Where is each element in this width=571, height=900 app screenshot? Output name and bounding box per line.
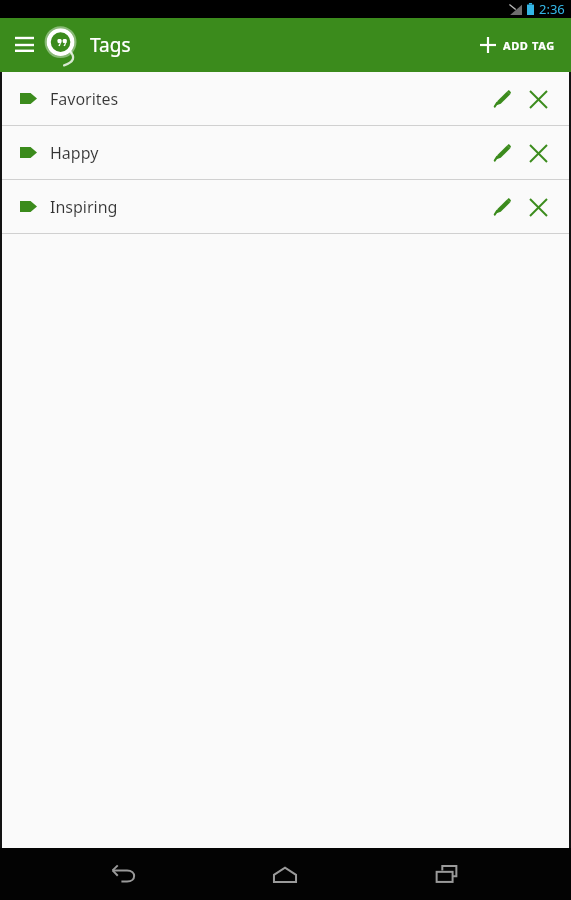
staticText: ADD TAG [503,38,555,53]
button[interactable]: Happy [2,126,569,179]
button[interactable]: Delete Favorites [521,82,555,116]
staticText: Tags [90,32,131,58]
staticText: Inspiring [50,196,118,218]
button[interactable]: Inspiring [2,180,569,233]
button[interactable]: ADD TAG [474,29,561,61]
button[interactable]: Edit Inspiring [485,190,519,224]
button[interactable]: Open navigation drawer [9,30,39,60]
button[interactable]: App logo [42,25,82,65]
button[interactable]: Edit Happy [485,136,519,170]
button[interactable]: Home [259,848,311,900]
button[interactable]: Delete Inspiring [521,190,555,224]
staticText: Favorites [50,88,119,110]
button[interactable]: Delete Happy [521,136,555,170]
button[interactable]: Edit Favorites [485,82,519,116]
button[interactable]: Favorites [2,72,569,125]
staticText: Happy [50,142,99,164]
button[interactable]: Recent apps [420,848,472,900]
staticText: 2:36 [539,0,565,18]
button[interactable]: Back [98,848,150,900]
